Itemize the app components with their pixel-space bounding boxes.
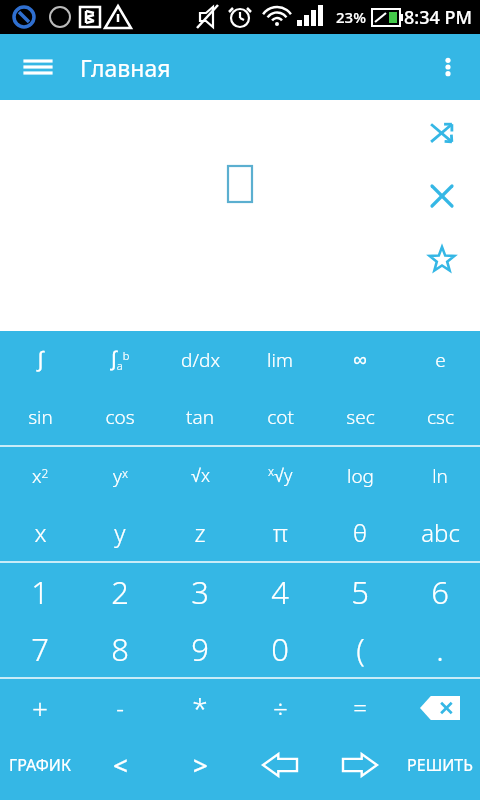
staticText: Главная [80,52,171,83]
staticText: 8:34 PM [404,5,472,30]
staticText: . [436,628,444,670]
staticText: z [194,516,206,549]
button[interactable]: e [400,331,480,388]
button[interactable]: > [160,736,240,793]
button[interactable]: log [320,447,400,504]
button[interactable]: 1 [0,563,80,620]
staticText: csc [427,404,454,430]
staticText: < [113,747,128,782]
button[interactable]: ln [400,447,480,504]
button[interactable]: d/dx [160,331,240,388]
staticText: sec [346,404,375,430]
staticText: x [34,516,47,549]
button[interactable]: Избранное [418,236,466,284]
staticText: > [193,747,208,782]
staticText: ∫ab [111,347,130,373]
button[interactable]: 8 [80,620,160,677]
staticText: ГРАФИК [9,754,71,776]
button[interactable]: ∫ [0,331,80,388]
button[interactable]: 4 [240,563,320,620]
staticText: РЕШИТЬ [407,754,473,776]
staticText: x2 [32,463,49,489]
button[interactable]: x [0,504,80,561]
button[interactable]: 9 [160,620,240,677]
staticText: ln [432,463,448,489]
staticText: ∫ [37,347,44,372]
button[interactable]: Влево [240,736,320,793]
staticText: ÷ [273,690,288,725]
button[interactable]: ( [320,620,400,677]
staticText: tan [186,404,214,430]
button[interactable]: θ [320,504,400,561]
button[interactable]: cot [240,388,320,445]
button[interactable]: √x [160,447,240,504]
staticText: 4 [271,571,289,613]
button[interactable]: ∫ab [80,331,160,388]
button[interactable]: csc [400,388,480,445]
button[interactable]: x√y [240,447,320,504]
button[interactable]: ∞ [320,331,400,388]
button[interactable]: ГРАФИК [0,736,80,793]
staticText: 6 [431,571,449,613]
staticText: √x [191,463,210,488]
button[interactable]: 0 [240,620,320,677]
staticText: x√y [268,463,293,488]
button[interactable]: - [80,679,160,736]
staticText: sin [28,404,53,430]
staticText: - [116,691,124,724]
button[interactable]: Меню [14,43,62,91]
button[interactable]: z [160,504,240,561]
staticText: 7 [31,628,49,670]
staticText: cos [105,404,135,430]
button[interactable]: ÷ [240,679,320,736]
button[interactable]: = [320,679,400,736]
staticText: 3 [191,571,209,613]
staticText: y [114,516,126,549]
button[interactable]: lim [240,331,320,388]
button[interactable]: 6 [400,563,480,620]
button[interactable]: * [160,679,240,736]
staticText: lim [267,347,293,373]
staticText: 9 [191,628,209,670]
button[interactable]: Вправо [320,736,400,793]
staticText: + [32,689,48,727]
staticText: π [273,516,288,549]
staticText: ∞ [353,349,367,370]
staticText: log [347,463,374,489]
staticText: abc [421,516,460,549]
staticText: = [353,691,367,724]
button[interactable]: < [80,736,160,793]
staticText: yx [113,463,128,489]
button[interactable]: РЕШИТЬ [400,736,480,793]
button[interactable]: Перемешать [418,108,466,156]
button[interactable]: + [0,679,80,736]
button[interactable]: 7 [0,620,80,677]
staticText: 0 [271,628,289,670]
button[interactable]: 5 [320,563,400,620]
staticText: 23% [336,7,366,27]
staticText: θ [353,516,367,549]
staticText: 1 [31,571,49,613]
button[interactable]: Ещё [424,43,472,91]
button[interactable]: sin [0,388,80,445]
button[interactable]: abc [400,504,480,561]
button[interactable]: 3 [160,563,240,620]
button[interactable]: x2 [0,447,80,504]
staticText: cot [267,404,294,430]
button[interactable]: cos [80,388,160,445]
button[interactable]: π [240,504,320,561]
staticText: d/dx [181,347,220,373]
button[interactable]: tan [160,388,240,445]
button[interactable]: 2 [80,563,160,620]
staticText: 5 [351,571,369,613]
button[interactable]: y [80,504,160,561]
staticText: 8 [111,628,129,670]
staticText: 2 [111,571,129,613]
button[interactable]: Удалить [400,679,480,736]
button[interactable]: Очистить [418,172,466,220]
button[interactable]: yx [80,447,160,504]
staticText: e [435,347,446,373]
button[interactable]: sec [320,388,400,445]
button[interactable]: . [400,620,480,677]
staticText: ( [356,628,365,670]
